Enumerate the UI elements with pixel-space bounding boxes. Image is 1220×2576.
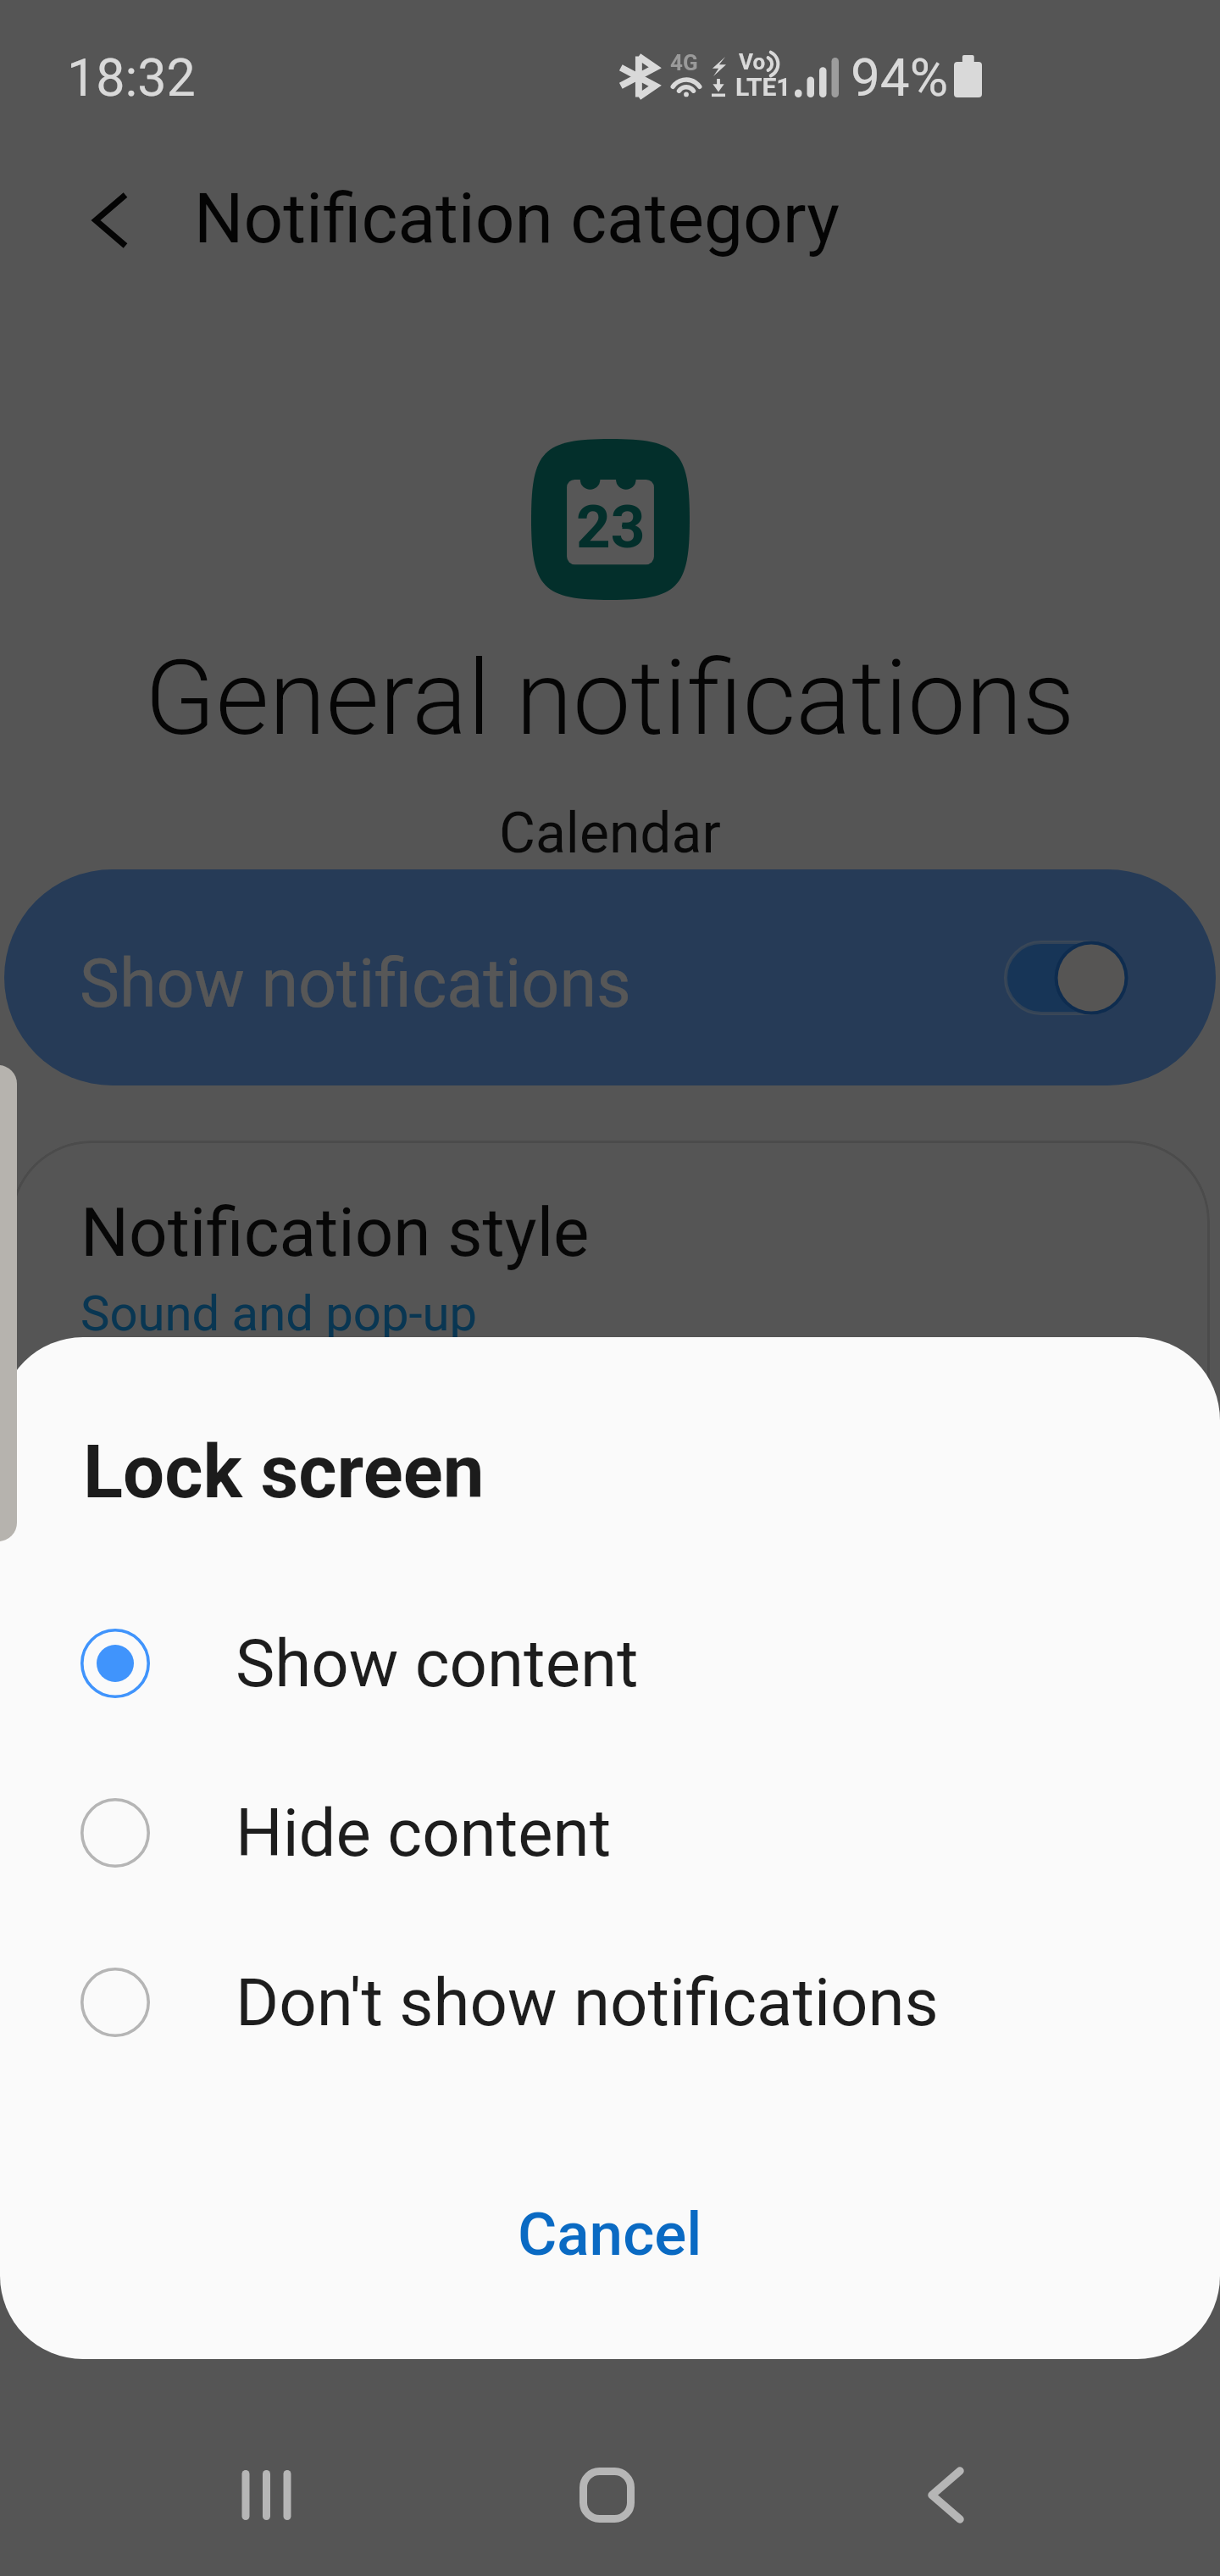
button[interactable]: Notification style — [10, 1141, 1210, 1513]
button[interactable]: Show notifications — [4, 869, 1216, 1085]
staticText: Calendar — [499, 801, 721, 866]
staticText: Lock screen — [83, 1429, 485, 1515]
staticText: LTE1 — [735, 72, 791, 102]
button[interactable]: Back — [844, 2418, 1047, 2571]
staticText: 94% — [851, 47, 949, 108]
staticText: 4G — [670, 50, 698, 75]
button[interactable]: Recent apps — [164, 2418, 368, 2571]
staticText: General notifications — [145, 638, 1075, 759]
staticText: Notification style — [80, 1193, 590, 1273]
button[interactable]: Don't show notifications — [0, 1918, 1220, 2087]
staticText: Vo — [739, 49, 766, 75]
staticText: Sound and pop-up — [80, 1285, 478, 1342]
button[interactable]: Navigate up — [0, 144, 180, 293]
staticText: 18:32 — [67, 47, 196, 108]
staticText: 23 — [576, 491, 646, 562]
staticText: Hide content — [236, 1795, 612, 1872]
staticText: Show notifications — [80, 945, 1006, 1024]
button[interactable]: Show content — [0, 1579, 1220, 1748]
button[interactable]: Hide content — [0, 1748, 1220, 1918]
button[interactable]: Cancel — [458, 2177, 762, 2291]
staticText: Show content — [236, 1625, 639, 1702]
button[interactable]: Home — [505, 2418, 708, 2571]
staticText: Notification category — [194, 178, 840, 259]
staticText: Cancel — [518, 2199, 702, 2269]
button[interactable]: Edge panel handle — [0, 1065, 17, 1541]
staticText: Don't show notifications — [236, 1964, 939, 2041]
